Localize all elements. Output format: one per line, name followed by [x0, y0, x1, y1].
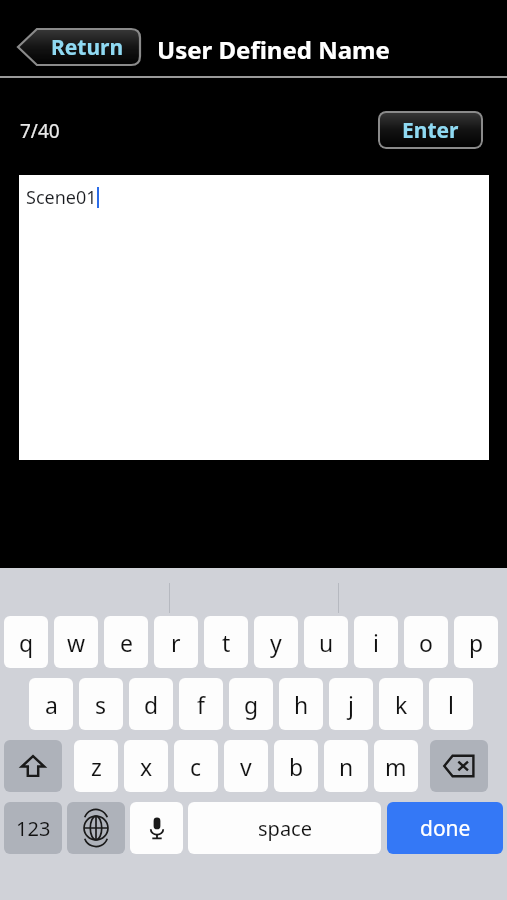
- staticText: g: [244, 689, 259, 720]
- button[interactable]: f: [179, 678, 223, 730]
- button[interactable]: h: [279, 678, 323, 730]
- staticText: 7/40: [20, 118, 60, 144]
- button[interactable]: l: [429, 678, 473, 730]
- staticText: s: [95, 689, 107, 720]
- staticText: space: [258, 815, 312, 842]
- button[interactable]: b: [274, 740, 318, 792]
- staticText: y: [270, 627, 282, 658]
- staticText: n: [339, 751, 354, 782]
- staticText: z: [91, 751, 102, 782]
- button[interactable]: x: [124, 740, 168, 792]
- button[interactable]: a: [29, 678, 73, 730]
- staticText: m: [385, 751, 407, 782]
- staticText: r: [171, 627, 181, 658]
- staticText: f: [197, 689, 205, 720]
- button[interactable]: d: [129, 678, 173, 730]
- button[interactable]: n: [324, 740, 368, 792]
- button[interactable]: 123: [4, 802, 62, 854]
- staticText: i: [373, 627, 379, 658]
- staticText: u: [319, 627, 334, 658]
- staticText: k: [395, 689, 408, 720]
- button[interactable]: Dictate: [130, 802, 183, 854]
- button[interactable]: o: [404, 616, 448, 668]
- button[interactable]: Backspace: [430, 740, 488, 792]
- staticText: Return: [51, 33, 124, 62]
- staticText: Enter: [402, 116, 459, 145]
- button[interactable]: Return: [18, 27, 140, 67]
- button[interactable]: s: [79, 678, 123, 730]
- button[interactable]: q: [4, 616, 48, 668]
- staticText: Scene01: [26, 185, 97, 210]
- staticText: v: [240, 751, 252, 782]
- staticText: w: [67, 627, 86, 658]
- staticText: a: [45, 689, 58, 720]
- button[interactable]: w: [54, 616, 98, 668]
- button[interactable]: space: [188, 802, 381, 854]
- button[interactable]: u: [304, 616, 348, 668]
- staticText: 123: [16, 815, 51, 842]
- staticText: done: [420, 814, 471, 843]
- button[interactable]: c: [174, 740, 218, 792]
- staticText: b: [289, 751, 304, 782]
- staticText: p: [469, 627, 484, 658]
- button[interactable]: r: [154, 616, 198, 668]
- button[interactable]: z: [74, 740, 118, 792]
- staticText: q: [19, 627, 34, 658]
- button[interactable]: p: [454, 616, 498, 668]
- button[interactable]: y: [254, 616, 298, 668]
- button[interactable]: Shift: [4, 740, 62, 792]
- staticText: e: [120, 627, 133, 658]
- button[interactable]: j: [329, 678, 373, 730]
- staticText: c: [190, 751, 202, 782]
- button[interactable]: done: [387, 802, 503, 854]
- button[interactable]: m: [374, 740, 418, 792]
- button[interactable]: e: [104, 616, 148, 668]
- button[interactable]: k: [379, 678, 423, 730]
- staticText: h: [294, 689, 309, 720]
- button[interactable]: Enter: [378, 111, 483, 149]
- staticText: o: [419, 627, 433, 658]
- button[interactable]: t: [204, 616, 248, 668]
- button[interactable]: i: [354, 616, 398, 668]
- staticText: User Defined Name: [157, 33, 390, 66]
- staticText: x: [140, 751, 153, 782]
- staticText: d: [144, 689, 159, 720]
- staticText: j: [348, 689, 354, 720]
- staticText: l: [448, 689, 454, 720]
- button[interactable]: g: [229, 678, 273, 730]
- staticText: t: [222, 627, 231, 658]
- button[interactable]: Scene01: [19, 175, 489, 460]
- button[interactable]: v: [224, 740, 268, 792]
- button[interactable]: Switch keyboard: [67, 802, 125, 854]
